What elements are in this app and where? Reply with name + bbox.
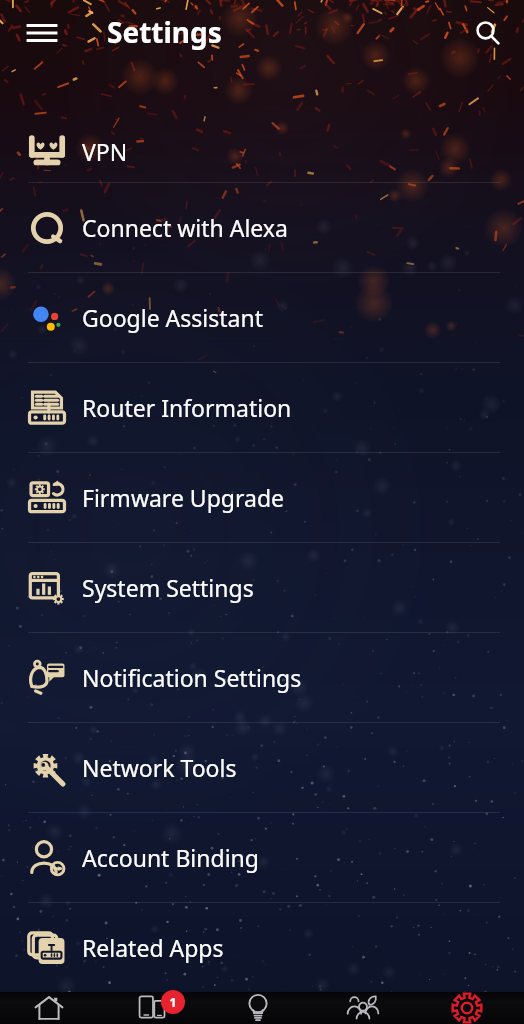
staticText: System Settings (82, 572, 254, 603)
staticText: Related Apps (82, 932, 224, 963)
button[interactable] (0, 66, 524, 118)
staticText: VPN (82, 136, 128, 167)
button[interactable]: Router Information (0, 363, 524, 452)
button[interactable]: VPN (0, 118, 524, 182)
button[interactable]: Insight (210, 992, 314, 1024)
button[interactable]: Account Binding (0, 813, 524, 902)
button[interactable]: Connect with Alexa (0, 183, 524, 272)
button[interactable]: Open navigation menu (14, 5, 70, 61)
button[interactable]: Network Tools (0, 723, 524, 812)
button[interactable]: 1 (105, 992, 209, 1024)
staticText: Firmware Upgrade (82, 482, 285, 513)
staticText: Router Information (82, 392, 292, 423)
button[interactable]: Notification Settings (0, 633, 524, 722)
staticText: 1 (169, 993, 177, 1011)
button[interactable]: Search (460, 5, 516, 61)
button[interactable]: Settings (419, 992, 523, 1024)
staticText: Settings (107, 13, 222, 51)
button[interactable]: Firmware Upgrade (0, 453, 524, 542)
button[interactable]: Family (315, 992, 419, 1024)
staticText: Google Assistant (82, 302, 264, 333)
button[interactable]: Related Apps (0, 903, 524, 992)
button[interactable]: System Settings (0, 543, 524, 632)
button[interactable]: Google Assistant (0, 273, 524, 362)
staticText: Connect with Alexa (82, 212, 288, 243)
staticText: Notification Settings (82, 662, 302, 693)
staticText: Account Binding (82, 842, 259, 873)
staticText: Network Tools (82, 752, 237, 783)
button[interactable]: Home (1, 992, 105, 1024)
